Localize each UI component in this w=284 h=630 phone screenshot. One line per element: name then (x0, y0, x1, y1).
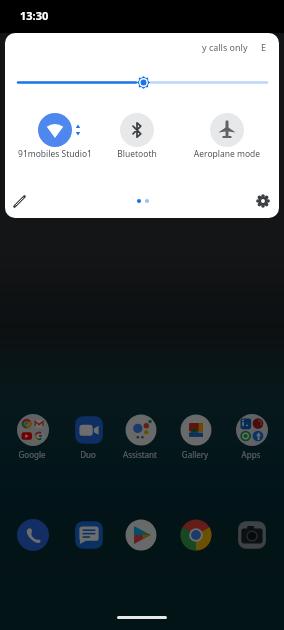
button[interactable] (17, 414, 49, 446)
staticText: 91mobiles Studio1 (10, 148, 100, 160)
staticText: Bluetooth (97, 148, 177, 160)
staticText: y calls only (202, 41, 248, 53)
staticText: Gallery (165, 449, 225, 460)
staticText: Aeroplane mode (182, 148, 272, 160)
button[interactable] (210, 113, 244, 147)
button[interactable] (10, 191, 30, 211)
button[interactable] (73, 519, 105, 551)
button[interactable] (73, 414, 105, 446)
staticText: 13:30 (20, 8, 49, 23)
button[interactable] (5, 33, 279, 131)
button[interactable] (17, 519, 49, 551)
button[interactable] (253, 191, 273, 211)
button[interactable] (236, 414, 268, 446)
button[interactable] (120, 113, 154, 147)
staticText: Assistant (110, 449, 170, 460)
staticText: Google (2, 449, 62, 460)
button[interactable] (125, 519, 157, 551)
staticText: Apps (221, 449, 281, 460)
button[interactable] (180, 414, 212, 446)
staticText: Duo (58, 449, 118, 460)
button[interactable] (125, 414, 157, 446)
button[interactable] (236, 519, 268, 551)
staticText: E (261, 41, 267, 53)
button[interactable] (38, 113, 72, 147)
button[interactable] (180, 519, 212, 551)
